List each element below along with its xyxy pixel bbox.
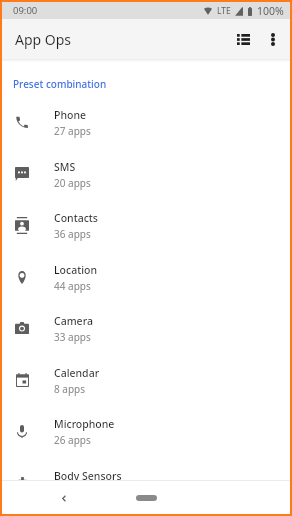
staticText: SMS	[54, 160, 76, 174]
staticText: Phone	[54, 108, 87, 122]
button[interactable]: Camera	[2, 303, 290, 355]
button[interactable]: More options	[260, 19, 286, 59]
button[interactable]: Preset combination	[2, 62, 290, 97]
staticText: 100%	[257, 4, 284, 18]
staticText: Location	[54, 263, 98, 277]
staticText: 33 apps	[54, 330, 91, 344]
button[interactable]: Contacts	[2, 200, 290, 252]
staticText: Camera	[54, 314, 93, 328]
button[interactable]: SMS	[2, 149, 290, 201]
staticText: Preset combination	[13, 77, 107, 91]
button[interactable]: Microphone	[2, 406, 290, 458]
staticText: 20 apps	[54, 176, 91, 190]
button[interactable]: Phone	[2, 97, 290, 149]
button[interactable]: Calendar	[2, 355, 290, 407]
staticText: 44 apps	[54, 279, 91, 293]
staticText: 8 apps	[54, 382, 86, 396]
button[interactable]: Location	[2, 252, 290, 304]
staticText: 27 apps	[54, 124, 91, 138]
staticText: App Ops	[15, 30, 72, 49]
staticText: Calendar	[54, 366, 100, 380]
button[interactable]: Body Sensors	[2, 458, 290, 480]
button[interactable]: Back	[51, 485, 77, 511]
staticText: 36 apps	[54, 227, 91, 241]
button[interactable]: Home	[136, 495, 157, 501]
staticText: 09:00	[13, 4, 38, 17]
staticText: Microphone	[54, 417, 115, 431]
staticText: Contacts	[54, 211, 98, 225]
staticText: Body Sensors	[54, 469, 122, 480]
button[interactable]: View list	[226, 19, 260, 59]
staticText: 26 apps	[54, 433, 91, 447]
staticText: LTE	[217, 5, 231, 17]
